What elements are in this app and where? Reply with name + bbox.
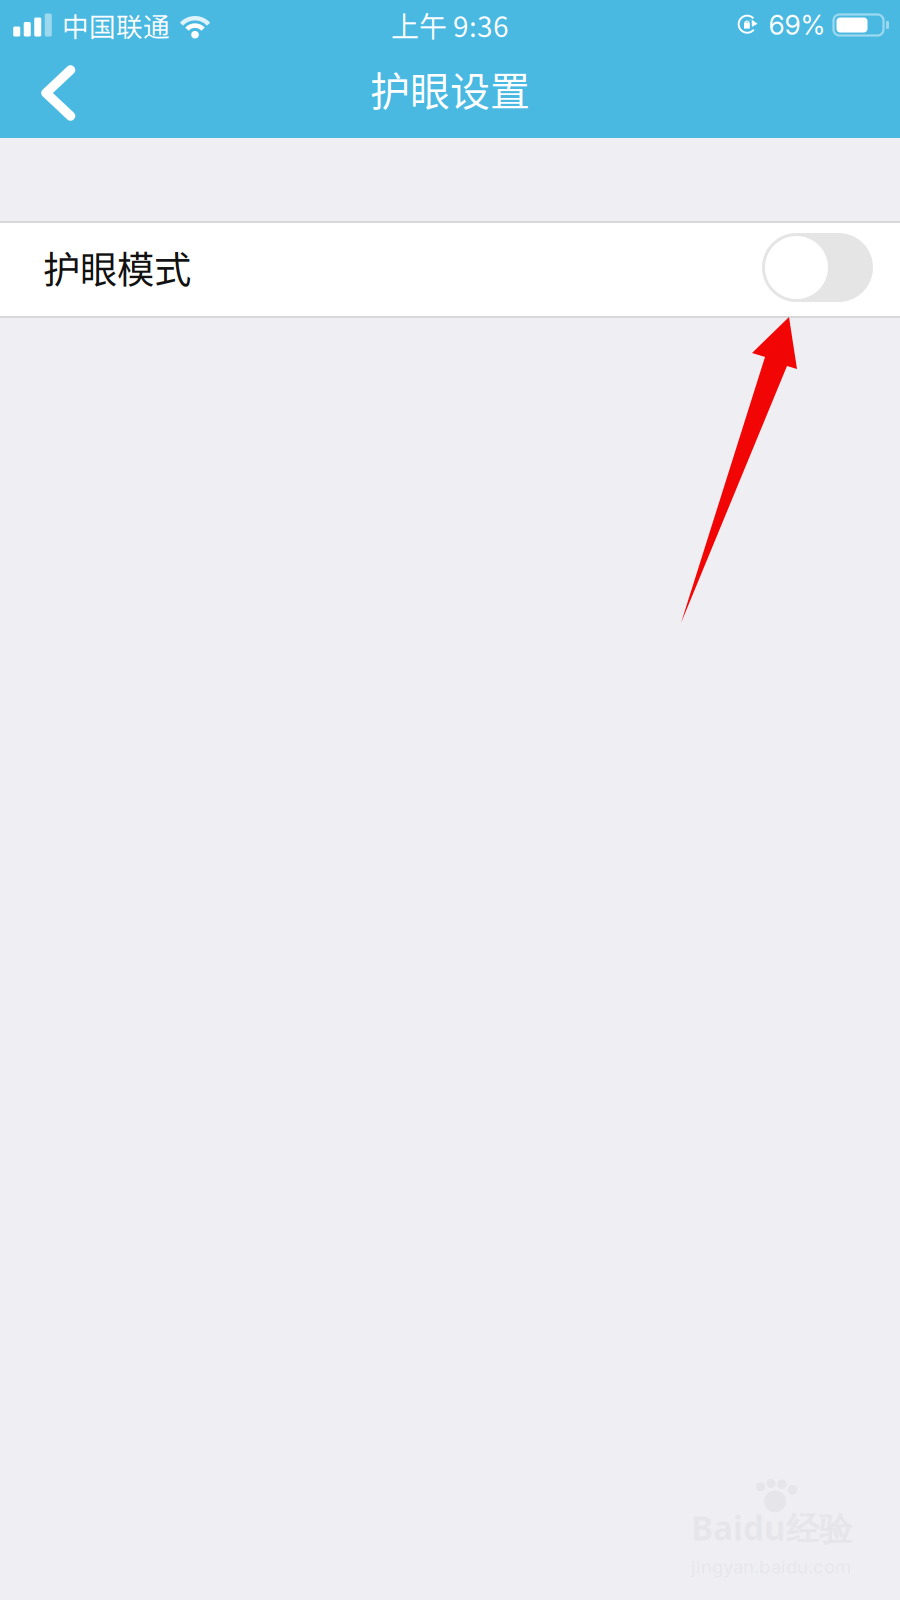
button[interactable]: Back (0, 50, 111, 138)
staticText: 69% (768, 9, 825, 41)
staticText: 中国联通 (62, 6, 170, 44)
button[interactable]: 护眼模式 (0, 223, 900, 316)
staticText: 护眼设置 (370, 59, 530, 117)
staticText: 上午 9:36 (391, 5, 509, 45)
staticText: 护眼模式 (43, 240, 191, 295)
staticText: Baidu经验 (691, 1505, 852, 1550)
